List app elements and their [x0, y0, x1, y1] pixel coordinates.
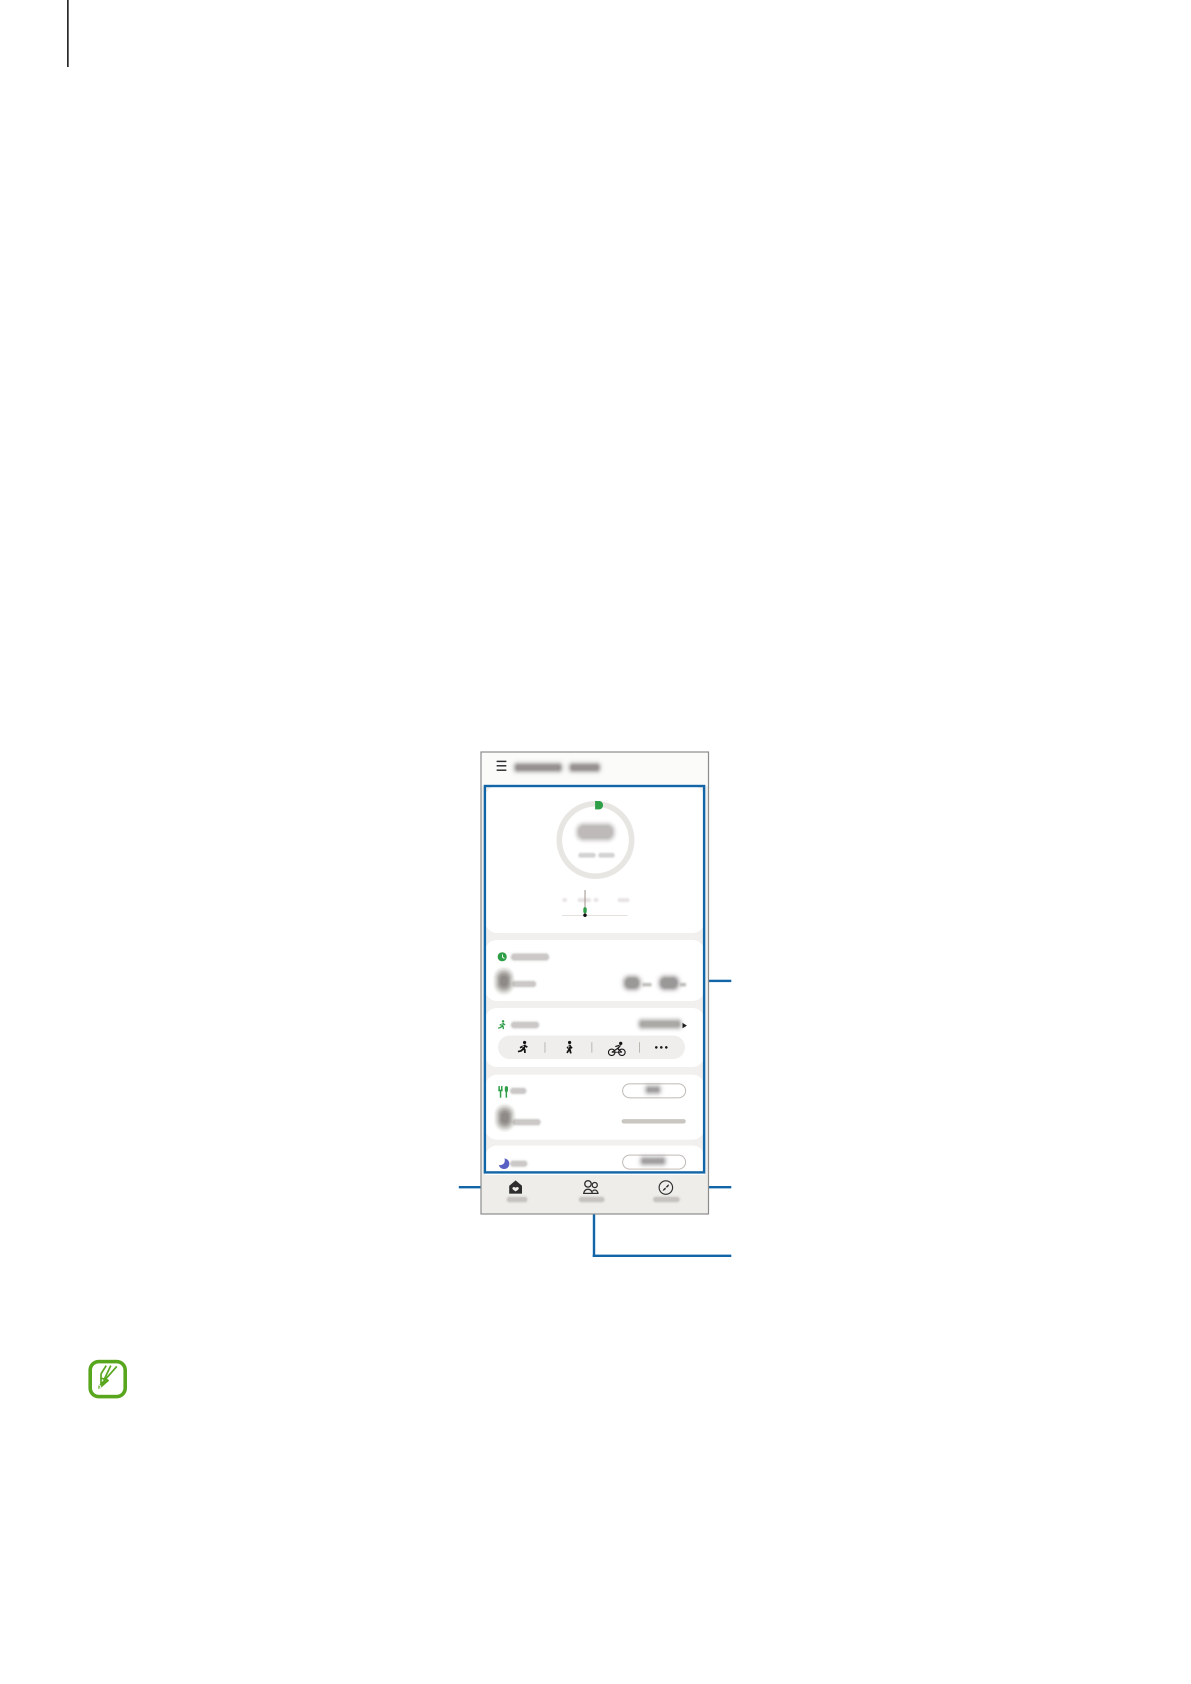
- button[interactable]: Sleep: [481, 1145, 708, 1189]
- button[interactable]: Exercise: [481, 1008, 708, 1067]
- button[interactable]: Together: [557, 1175, 633, 1213]
- button[interactable]: Food: [481, 1075, 708, 1140]
- button[interactable]: Menu: [489, 754, 513, 778]
- button[interactable]: Steps: [481, 786, 708, 933]
- button[interactable]: Home: [481, 1175, 557, 1213]
- button[interactable]: Discover: [633, 1175, 709, 1213]
- button[interactable]: Heart rate: [481, 940, 708, 1001]
